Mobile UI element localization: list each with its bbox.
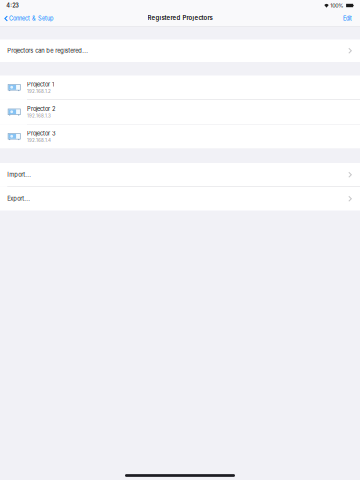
staticText: Export... (7, 195, 30, 202)
staticText: Registered Projectors (147, 14, 212, 22)
staticText: Edit (343, 15, 352, 22)
button[interactable]: Import... (0, 163, 360, 186)
staticText: Projector 1 (27, 81, 54, 88)
staticText: 192.168.1.4 (27, 137, 51, 143)
button[interactable]: Projector 2 (0, 100, 360, 124)
staticText: Projectors can be registered... (7, 47, 88, 54)
staticText: Projector 2 (27, 105, 55, 112)
button[interactable]: Projectors can be registered... (0, 39, 360, 62)
button[interactable]: Export... (0, 187, 360, 210)
button[interactable]: Connect & Setup (0, 11, 57, 25)
button[interactable]: Edit (337, 11, 360, 25)
staticText: Connect & Setup (9, 15, 53, 22)
staticText: 192.168.1.2 (27, 88, 51, 94)
staticText: 192.168.1.3 (27, 113, 51, 118)
staticText: Import... (7, 171, 31, 178)
button[interactable]: Projector 3 (0, 124, 360, 148)
button[interactable]: Projector 1 (0, 75, 360, 99)
staticText: Projector 3 (27, 130, 56, 137)
staticText: 100% (330, 2, 343, 9)
staticText: 4:23 (6, 2, 19, 9)
